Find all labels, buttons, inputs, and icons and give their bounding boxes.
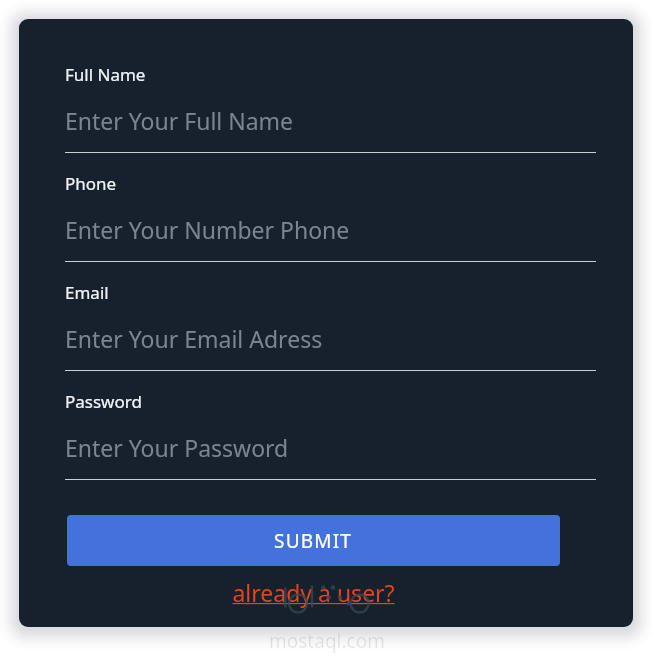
button[interactable]: Full Name [65, 63, 596, 172]
staticText: Enter Your Number Phone [65, 214, 350, 245]
staticText: Password [65, 390, 142, 413]
button[interactable]: Password [65, 390, 596, 499]
staticText: Enter Your Password [65, 432, 289, 463]
staticText: Full Name [65, 63, 146, 86]
staticText: already a user? [232, 577, 395, 608]
button[interactable]: already a user? [67, 576, 560, 608]
button[interactable]: Email [65, 281, 596, 390]
button[interactable]: Phone [65, 172, 596, 281]
button[interactable]: SUBMIT [67, 515, 560, 566]
staticText: SUBMIT [274, 528, 353, 554]
staticText: Enter Your Full Name [65, 105, 294, 136]
staticText: Enter Your Email Adress [65, 323, 323, 354]
staticText: Phone [65, 172, 117, 195]
staticText: Email [65, 281, 109, 304]
staticText: mostaql.com [269, 628, 385, 654]
